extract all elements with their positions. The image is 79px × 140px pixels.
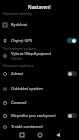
staticText: Preferovaná zařízení [3, 46, 37, 51]
staticText: Chytrý GPS [11, 38, 33, 44]
button[interactable]: Ovládání systém [0, 82, 79, 95]
button[interactable]: Chytrý GPS [0, 34, 79, 47]
button[interactable]: Home [35, 130, 45, 140]
button[interactable]: Recents [17, 130, 27, 140]
staticText: Trvalé oznámení [11, 124, 43, 130]
staticText: Klepněte pro zachycení [11, 113, 56, 119]
button[interactable]: Nastavení [0, 0, 79, 13]
staticText: Telefon [11, 56, 23, 60]
staticText: Rychlost [11, 22, 28, 28]
staticText: Zdraví [11, 71, 23, 77]
staticText: Nastavení [28, 4, 51, 10]
button[interactable]: Toggle on [67, 38, 77, 43]
button[interactable]: Toggle off [67, 113, 77, 118]
button[interactable]: Vybrat (Nepřipojeno) [0, 49, 79, 62]
staticText: Ovládání systém [11, 86, 43, 92]
button[interactable]: Toggle off [67, 71, 77, 76]
button[interactable]: Rychlost [0, 18, 79, 31]
staticText: Časovač [11, 100, 27, 106]
button[interactable]: Časovač [0, 96, 79, 109]
button[interactable]: Klepněte pro zachycení [0, 109, 79, 122]
staticText: Nastavení aplikace [3, 63, 34, 68]
button[interactable]: Zdraví [0, 67, 79, 80]
staticText: Vybrat (Nepřipojeno) [11, 51, 52, 57]
staticText: Nastavení aktivity [3, 11, 32, 16]
button[interactable]: Back [53, 130, 63, 140]
button[interactable]: Trvalé oznámení [0, 120, 79, 133]
